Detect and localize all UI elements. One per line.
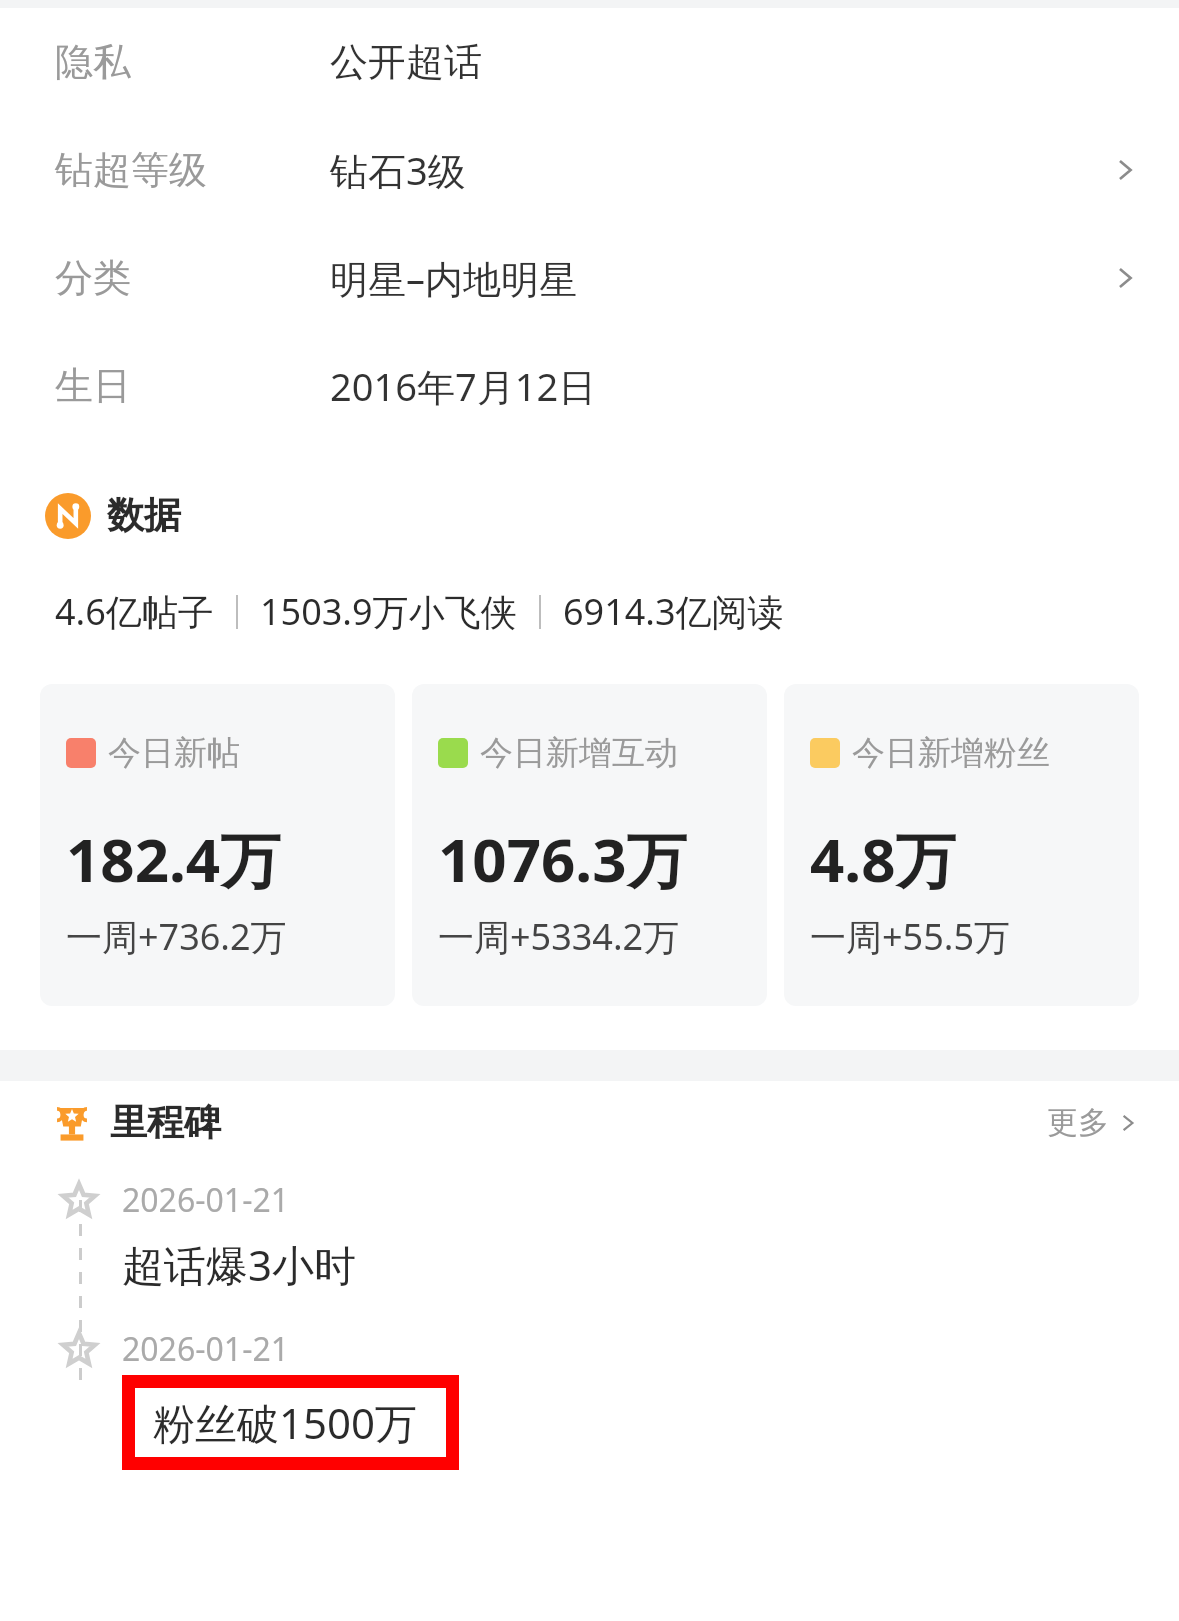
button[interactable]: 今日新增粉丝 <box>784 684 1139 1006</box>
staticText: 4.6亿帖子 <box>55 587 214 636</box>
button[interactable]: 隐私 <box>0 8 1179 116</box>
staticText: 今日新增粉丝 <box>852 732 1050 774</box>
staticText: 6914.3亿阅读 <box>563 587 784 636</box>
button[interactable]: 2026-01-21 <box>0 1327 1179 1470</box>
button[interactable]: 生日 <box>0 332 1179 440</box>
button[interactable]: 今日新增互动 <box>412 684 767 1006</box>
staticText: 生日 <box>55 362 131 410</box>
button[interactable]: 2026-01-21 <box>0 1178 1179 1293</box>
staticText: 分类 <box>55 254 131 302</box>
staticText: 数据 <box>107 492 181 539</box>
button[interactable]: 钻超等级 <box>0 116 1179 224</box>
staticText: 公开超话 <box>330 38 482 86</box>
button[interactable]: 4.6亿帖子 <box>55 587 1179 636</box>
staticText: 明星–内地明星 <box>330 252 578 304</box>
staticText: 1076.3万 <box>438 818 687 900</box>
staticText: 今日新帖 <box>108 732 240 774</box>
staticText: 2026-01-21 <box>122 1327 290 1371</box>
staticText: 182.4万 <box>66 818 281 900</box>
staticText: 2016年7月12日 <box>330 360 597 412</box>
staticText: 2026-01-21 <box>122 1178 290 1222</box>
staticText: 1503.9万小飞侠 <box>260 587 517 636</box>
button[interactable]: 分类 <box>0 224 1179 332</box>
staticText: 钻超等级 <box>55 146 207 194</box>
staticText: 一周+5334.2万 <box>438 912 680 961</box>
button[interactable]: 数据 <box>45 492 1179 539</box>
staticText: 超话爆3小时 <box>122 1236 357 1293</box>
staticText: 钻石3级 <box>330 144 466 196</box>
staticText: 里程碑 <box>110 1099 221 1146</box>
staticText: 一周+55.5万 <box>810 912 1011 961</box>
staticText: 隐私 <box>55 38 131 86</box>
staticText: 更多 <box>1047 1103 1109 1142</box>
button[interactable]: 更多 <box>1047 1103 1139 1142</box>
staticText: 粉丝破1500万 <box>153 1394 418 1451</box>
staticText: 4.8万 <box>810 818 956 900</box>
button[interactable]: 今日新帖 <box>40 684 395 1006</box>
staticText: 一周+736.2万 <box>66 912 287 961</box>
staticText: 今日新增互动 <box>480 732 678 774</box>
